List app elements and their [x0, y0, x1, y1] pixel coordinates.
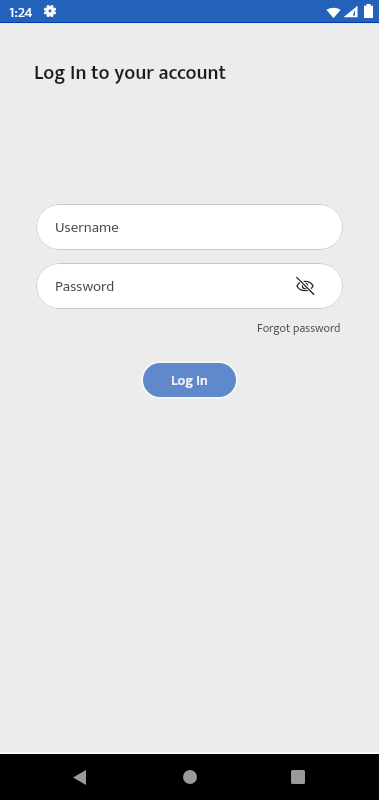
button[interactable]: Forgot password [257, 318, 341, 338]
button[interactable]: Home [153, 754, 226, 800]
staticText: Password [55, 274, 115, 299]
button[interactable]: Show password [296, 277, 314, 295]
button[interactable]: Username [36, 204, 343, 250]
staticText: Log In [171, 369, 208, 392]
staticText: Log In to your account [34, 56, 227, 89]
button[interactable]: Log In [143, 363, 236, 397]
button[interactable]: Password [36, 263, 343, 309]
button[interactable]: Recent apps [262, 754, 334, 800]
staticText: Forgot password [257, 318, 341, 338]
staticText: 1:24 [9, 0, 33, 22]
button[interactable]: Back [43, 754, 115, 800]
staticText: Username [55, 215, 119, 240]
